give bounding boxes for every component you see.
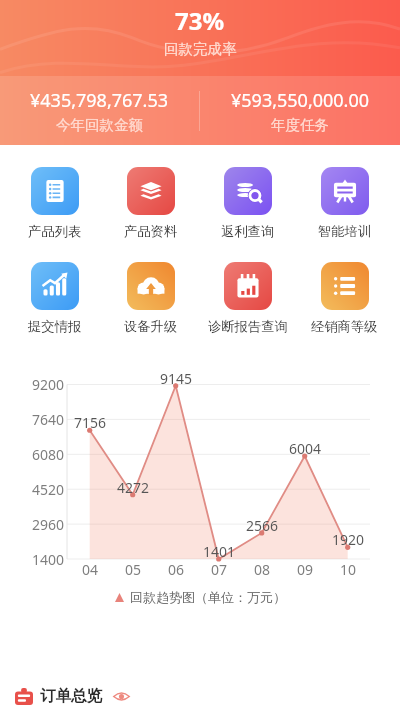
staticText: 产品资料	[124, 223, 178, 240]
button[interactable]: 产品列表	[7, 161, 103, 246]
staticText: 2566	[240, 516, 284, 535]
staticText: 10	[332, 560, 364, 579]
staticText: 诊断报告查询	[208, 318, 288, 335]
staticText: 2960	[16, 515, 64, 534]
staticText: 6004	[283, 439, 327, 458]
staticText: 9145	[154, 369, 198, 388]
staticText: 9200	[16, 375, 64, 394]
staticText: 4272	[111, 478, 155, 497]
staticText: 今年回款金额	[56, 116, 143, 134]
staticText: 返利查询	[221, 223, 275, 240]
staticText: 08	[246, 560, 278, 579]
staticText: 经销商等级	[311, 318, 378, 335]
button[interactable]: 产品资料	[103, 161, 199, 246]
staticText: 年度任务	[271, 116, 329, 134]
staticText: 05	[117, 560, 149, 579]
button[interactable]: 诊断报告查询	[199, 256, 296, 341]
staticText: 智能培训	[318, 223, 372, 240]
button[interactable]: 订单总览	[0, 684, 400, 708]
staticText: 1920	[326, 530, 370, 549]
staticText: 07	[203, 560, 235, 579]
button[interactable]: 返利查询	[199, 161, 296, 246]
staticText: 09	[289, 560, 321, 579]
staticText: ¥593,550,000.00	[231, 88, 370, 113]
button[interactable]: Toggle visibility	[113, 688, 130, 705]
button[interactable]: 提交情报	[7, 256, 103, 341]
staticText: 1400	[16, 550, 64, 569]
staticText: 回款完成率	[164, 40, 237, 58]
staticText: 订单总览	[40, 686, 102, 706]
staticText: 7156	[68, 413, 112, 432]
staticText: 4520	[16, 480, 64, 499]
staticText: 7640	[16, 410, 64, 429]
staticText: 设备升级	[124, 318, 178, 335]
staticText: 提交情报	[28, 318, 82, 335]
staticText: 1401	[197, 542, 241, 561]
staticText: 73%	[175, 4, 225, 37]
staticText: 回款趋势图（单位：万元）	[130, 589, 286, 605]
button[interactable]: ¥435,798,767.53	[0, 76, 199, 145]
staticText: 04	[74, 560, 106, 579]
button[interactable]: 设备升级	[103, 256, 199, 341]
staticText: ¥435,798,767.53	[30, 88, 169, 113]
staticText: 6080	[16, 445, 64, 464]
staticText: 产品列表	[28, 223, 82, 240]
button[interactable]: 智能培训	[296, 161, 393, 246]
staticText: 06	[160, 560, 192, 579]
button[interactable]: ¥593,550,000.00	[200, 76, 400, 145]
button[interactable]: 经销商等级	[296, 256, 393, 341]
